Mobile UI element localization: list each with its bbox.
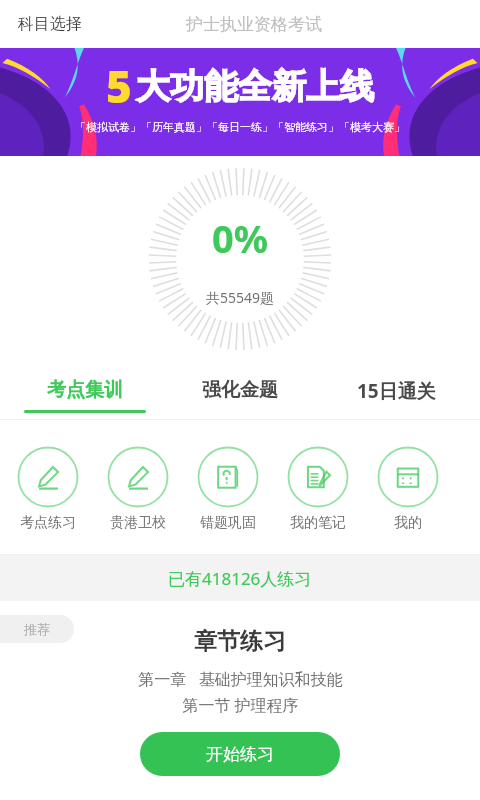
staticText: 考点练习 bbox=[20, 514, 76, 532]
button[interactable]: 已有418126人练习 bbox=[0, 555, 480, 601]
staticText: 章节练习 bbox=[194, 627, 286, 656]
button[interactable]: 考点练习 bbox=[14, 446, 82, 532]
staticText: 已有418126人练习 bbox=[168, 567, 312, 590]
staticText: 0% bbox=[212, 212, 269, 264]
staticText: 5 bbox=[106, 56, 132, 116]
button[interactable]: 贵港卫校 bbox=[104, 446, 172, 532]
button[interactable]: 我的 bbox=[374, 446, 442, 532]
button[interactable]: 错题巩固 bbox=[194, 446, 262, 532]
staticText: 科目选择 bbox=[18, 14, 82, 34]
staticText: 15日通关 bbox=[357, 378, 436, 404]
staticText: 开始练习 bbox=[206, 744, 274, 765]
staticText: 第一节 护理程序 bbox=[182, 694, 299, 716]
staticText: 强化金题 bbox=[202, 378, 278, 402]
button[interactable]: 开始练习 bbox=[140, 732, 340, 776]
staticText: 考点集训 bbox=[47, 378, 123, 402]
button[interactable]: 强化金题 bbox=[169, 374, 311, 417]
staticText: 我的 bbox=[394, 514, 422, 532]
button[interactable]: 5 bbox=[0, 48, 480, 156]
button[interactable]: 15日通关 bbox=[325, 374, 467, 419]
staticText: 推荐 bbox=[24, 621, 50, 637]
staticText: 共55549题 bbox=[206, 288, 275, 307]
staticText: 贵港卫校 bbox=[110, 514, 166, 532]
button[interactable]: 科目选择 bbox=[14, 8, 86, 40]
staticText: 大功能全新上线 bbox=[136, 65, 374, 108]
staticText: 第一章 基础护理知识和技能 bbox=[138, 668, 343, 690]
button[interactable]: 我的笔记 bbox=[284, 446, 352, 532]
staticText: 错题巩固 bbox=[200, 514, 256, 532]
staticText: 护士执业资格考试 bbox=[186, 14, 322, 35]
button[interactable]: 考点集训 bbox=[14, 374, 156, 417]
staticText: 我的笔记 bbox=[290, 514, 346, 532]
staticText: 「模拟试卷」「历年真题」「每日一练」「智能练习」「模考大赛」 bbox=[75, 120, 405, 134]
